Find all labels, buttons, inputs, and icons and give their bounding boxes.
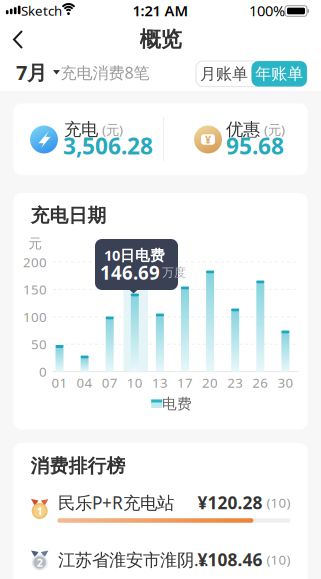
button[interactable]: 1 — [27, 484, 293, 528]
staticText: 17 — [177, 374, 193, 391]
staticText: 民乐P+R充电站 — [58, 491, 174, 514]
staticText: 50 — [31, 335, 47, 353]
staticText: 1 — [37, 504, 43, 518]
staticText: ¥120.28 — [197, 491, 262, 514]
staticText: 江苏省淮安市淮阴... — [58, 548, 209, 571]
staticText: ¥108.46 — [197, 548, 262, 571]
staticText: 10日电费 — [104, 245, 165, 265]
staticText: 13 — [152, 374, 168, 391]
staticText: 100% — [249, 1, 285, 20]
staticText: 26 — [252, 374, 268, 391]
staticText: 充电消费8笔 — [60, 62, 149, 83]
staticText: 3,506.28 — [63, 131, 153, 161]
staticText: 100 — [23, 308, 47, 326]
staticText: 1:21 AM — [132, 1, 188, 20]
button[interactable] — [2, 23, 32, 56]
staticText: 概览 — [139, 26, 181, 53]
staticText: 充电 — [64, 119, 98, 140]
staticText: 150 — [23, 280, 47, 298]
staticText: 2 — [37, 555, 43, 570]
staticText: (10) — [266, 551, 290, 568]
staticText: (元) — [264, 121, 285, 138]
staticText: 消费排行榜 — [30, 454, 125, 477]
staticText: 200 — [23, 253, 47, 271]
staticText: 23 — [227, 374, 243, 391]
staticText: 优惠 — [226, 119, 260, 140]
staticText: 月账单 — [200, 64, 248, 84]
staticText: 7月 — [16, 59, 47, 86]
staticText: 元 — [28, 235, 41, 252]
staticText: 07 — [102, 374, 118, 391]
staticText: 30 — [277, 374, 293, 391]
button[interactable]: 7月 — [16, 59, 60, 85]
staticText: 10 — [127, 374, 143, 391]
staticText: 0 — [39, 363, 47, 380]
staticText: 95.68 — [226, 131, 284, 161]
staticText: (元) — [102, 121, 123, 138]
button[interactable]: 年账单 — [251, 61, 307, 86]
staticText: 年账单 — [255, 64, 303, 84]
staticText: 充电日期 — [30, 204, 106, 227]
staticText: 20 — [202, 374, 218, 391]
staticText: 万度 — [162, 265, 186, 280]
button[interactable]: 2 — [27, 541, 293, 579]
staticText: ¥ — [205, 132, 211, 147]
staticText: (10) — [266, 494, 290, 511]
staticText: 电费 — [162, 395, 192, 413]
staticText: 01 — [51, 374, 67, 391]
staticText: Sketch — [21, 2, 62, 19]
staticText: 04 — [77, 374, 93, 391]
staticText: 146.69 — [100, 260, 160, 285]
button[interactable]: 月账单 — [196, 61, 251, 86]
